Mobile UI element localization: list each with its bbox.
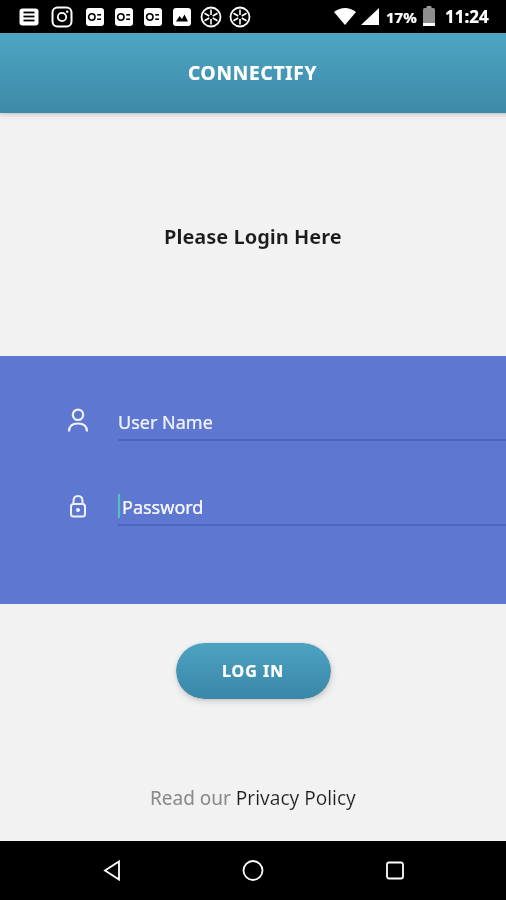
button[interactable] bbox=[337, 841, 506, 900]
button[interactable]: LOG IN bbox=[176, 643, 331, 699]
staticText: 11:24 bbox=[445, 5, 489, 28]
staticText: CONNECTIFY bbox=[188, 60, 318, 86]
button[interactable]: Password bbox=[122, 495, 204, 520]
button[interactable] bbox=[168, 841, 337, 900]
button[interactable] bbox=[0, 841, 168, 900]
button[interactable]: Read our Privacy Policy bbox=[150, 785, 356, 811]
button[interactable]: User Name bbox=[118, 410, 213, 435]
staticText: 17% bbox=[386, 7, 417, 27]
staticText: LOG IN bbox=[222, 660, 285, 682]
staticText: Please Login Here bbox=[164, 223, 342, 250]
